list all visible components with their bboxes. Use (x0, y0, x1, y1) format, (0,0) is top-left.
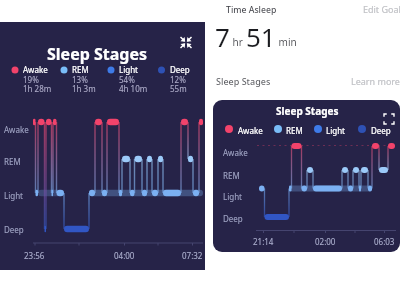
button[interactable] (381, 111, 397, 127)
staticText: Sleep Stages (47, 43, 148, 65)
staticText: Deep (223, 213, 243, 224)
staticText: Awake (223, 147, 248, 158)
staticText: REM (4, 156, 21, 167)
staticText: 02:00 (315, 236, 336, 247)
button[interactable]: Learn more (351, 75, 400, 87)
staticText: 13% (72, 74, 88, 85)
staticText: Learn more (351, 75, 400, 87)
staticText: Sleep Stages (216, 75, 271, 87)
staticText: 23:56 (24, 250, 45, 261)
staticText: Edit Goal (363, 3, 400, 15)
staticText: Deep (4, 224, 24, 235)
staticText: 12% (170, 74, 186, 85)
staticText: Awake (4, 124, 29, 135)
staticText: 19% (23, 74, 39, 85)
staticText: Time Asleep (226, 4, 277, 16)
button[interactable] (0, 22, 205, 270)
staticText: 04:00 (114, 250, 135, 261)
staticText: Light (4, 190, 24, 201)
staticText: Light (326, 125, 346, 136)
staticText: 06:03 (374, 236, 395, 247)
staticText: Sleep Stages (276, 104, 339, 118)
staticText: Deep (371, 125, 391, 136)
button[interactable] (178, 34, 195, 51)
staticText: REM (72, 64, 89, 75)
staticText: Light (119, 64, 139, 75)
staticText: Light (223, 191, 243, 202)
staticText: 07:32 (182, 250, 203, 261)
staticText: 4h 10m (119, 83, 148, 94)
staticText: hr (230, 35, 246, 49)
staticText: REM (286, 125, 303, 136)
staticText: 1h 3m (72, 83, 96, 94)
staticText: REM (223, 170, 240, 181)
staticText: 55m (170, 83, 187, 94)
staticText: 7 (215, 19, 230, 54)
staticText: Deep (170, 64, 190, 75)
staticText: 54% (119, 74, 135, 85)
button[interactable]: Edit Goal (363, 3, 400, 15)
staticText: 1h 28m (23, 83, 52, 94)
staticText: Awake (238, 125, 263, 136)
staticText: Awake (23, 64, 48, 75)
staticText: 21:14 (253, 236, 274, 247)
staticText: 51 (246, 19, 276, 54)
staticText: min (276, 35, 297, 49)
button[interactable] (213, 100, 400, 252)
